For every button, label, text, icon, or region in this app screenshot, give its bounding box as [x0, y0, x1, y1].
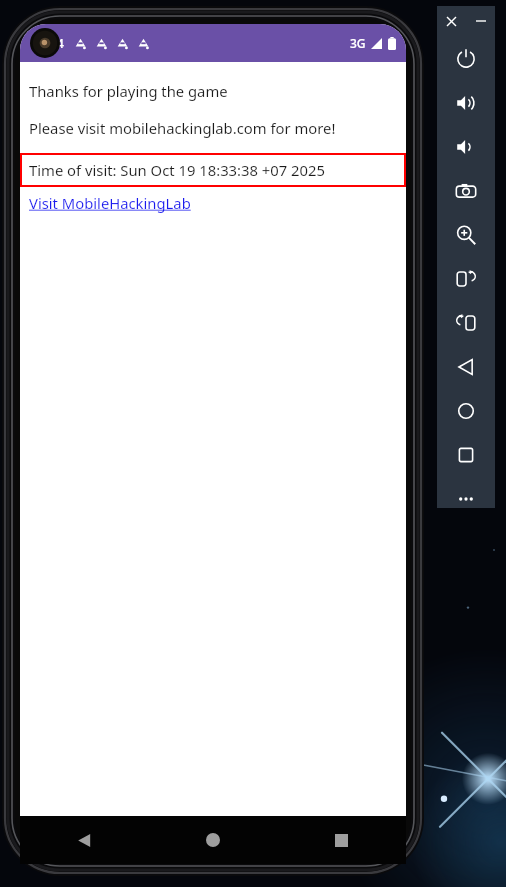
button[interactable]: Home — [148, 816, 277, 864]
button[interactable]: Take screenshot — [437, 169, 495, 213]
staticText: 3G — [350, 35, 366, 51]
staticText: 12:34 — [32, 35, 65, 52]
button[interactable]: Visit MobileHackingLab — [29, 193, 191, 213]
button[interactable]: Rotate left — [437, 257, 495, 301]
button[interactable]: More — [437, 477, 495, 521]
button[interactable]: Minimize — [466, 6, 495, 36]
staticText: Visit MobileHackingLab — [29, 193, 191, 213]
button[interactable]: Recent apps — [277, 816, 406, 864]
staticText: Please visit mobilehackinglab.com for mo… — [29, 118, 336, 138]
button[interactable]: Home — [437, 389, 495, 433]
button[interactable]: Overview — [437, 433, 495, 477]
staticText: Time of visit: Sun Oct 19 18:33:38 +07 2… — [29, 160, 325, 180]
staticText: Thanks for playing the game — [29, 81, 228, 101]
button[interactable]: Volume down — [437, 125, 495, 169]
button[interactable]: Volume up — [437, 81, 495, 125]
button[interactable]: Back — [437, 345, 495, 389]
button[interactable]: Power — [437, 37, 495, 81]
button[interactable]: Close — [437, 6, 466, 36]
button[interactable]: Rotate right — [437, 301, 495, 345]
button[interactable]: Back — [20, 816, 148, 864]
button[interactable]: Zoom — [437, 213, 495, 257]
